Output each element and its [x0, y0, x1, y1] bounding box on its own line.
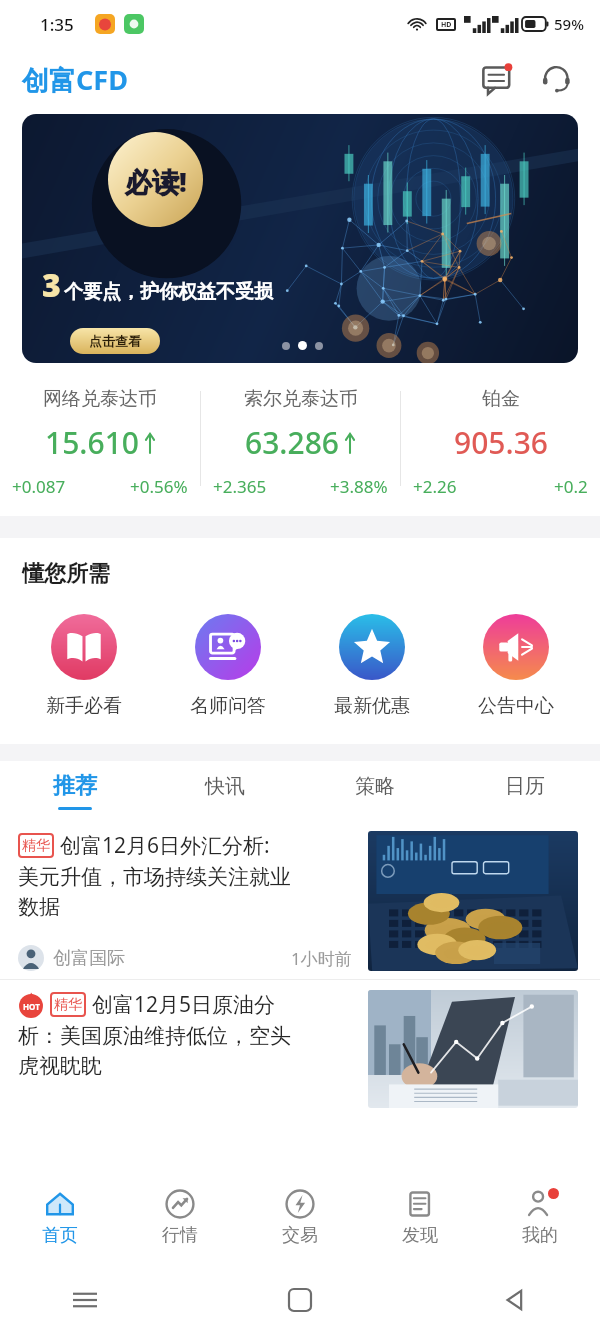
staticText: 虎视眈眈 — [18, 1053, 102, 1079]
staticText: 必读! — [125, 163, 187, 200]
button[interactable]: 首页 — [0, 1180, 120, 1266]
button[interactable]: 精华 — [0, 821, 600, 979]
button[interactable]: 新手必看 — [24, 614, 144, 718]
staticText: 行情 — [162, 1224, 198, 1247]
button[interactable]: 发现 — [360, 1180, 480, 1266]
button[interactable]: 名师问答 — [168, 614, 288, 718]
staticText: 905.36 — [454, 422, 548, 463]
staticText: +0.087 — [12, 475, 66, 498]
staticText: 公告中心 — [478, 694, 554, 718]
button[interactable]: Customer service — [534, 56, 580, 102]
staticText: 最新优惠 — [334, 694, 410, 718]
staticText: 数据 — [18, 894, 60, 920]
button[interactable]: Recents — [60, 1275, 110, 1325]
button[interactable]: Messages — [476, 56, 522, 102]
button[interactable]: 日历 — [450, 761, 600, 821]
staticText: 创富国际 — [53, 947, 125, 970]
button[interactable]: Home — [275, 1275, 325, 1325]
staticText: 创富12月6日外汇分析: — [60, 831, 270, 860]
staticText: 析：美国原油维持低位，空头 — [18, 1023, 291, 1049]
staticText: +2.365 — [213, 475, 267, 498]
button[interactable]: 推荐 — [0, 761, 150, 821]
button[interactable]: 最新优惠 — [312, 614, 432, 718]
staticText: 63.286 — [245, 422, 339, 463]
staticText: 3 — [42, 263, 61, 307]
staticText: 铂金 — [482, 387, 520, 411]
staticText: 索尔兑泰达币 — [244, 387, 358, 411]
button[interactable]: HOT — [0, 980, 600, 1108]
button[interactable]: 交易 — [240, 1180, 360, 1266]
staticText: 15.610 — [45, 422, 139, 463]
staticText: 名师问答 — [190, 694, 266, 718]
staticText: 1:35 — [40, 13, 74, 36]
staticText: 美元升值，市场持续关注就业 — [18, 864, 291, 890]
staticText: 1小时前 — [291, 947, 352, 970]
staticText: 懂您所需 — [22, 560, 110, 588]
staticText: 网络兑泰达币 — [43, 387, 157, 411]
staticText: 推荐 — [53, 772, 97, 800]
staticText: 交易 — [282, 1224, 318, 1247]
button[interactable]: 铂金 — [401, 363, 600, 516]
staticText: 精华 — [54, 996, 82, 1014]
staticText: +2.26 — [413, 475, 457, 498]
button[interactable]: 公告中心 — [456, 614, 576, 718]
staticText: 个要点，护你权益不受损 — [64, 280, 273, 304]
staticText: 快讯 — [205, 774, 245, 799]
staticText: HD — [441, 20, 452, 30]
staticText: HOT — [23, 1001, 40, 1012]
staticText: 新手必看 — [46, 694, 122, 718]
button[interactable]: 点击查看 — [70, 328, 160, 354]
button[interactable]: 快讯 — [150, 761, 300, 821]
button[interactable]: 策略 — [300, 761, 450, 821]
button[interactable]: 必读! — [22, 114, 578, 363]
staticText: 点击查看 — [89, 333, 141, 349]
staticText: 首页 — [42, 1224, 78, 1247]
staticText: 我的 — [522, 1224, 558, 1247]
button[interactable]: 索尔兑泰达币 — [201, 363, 400, 516]
staticText: 59% — [554, 14, 584, 34]
staticText: +0.2 — [554, 475, 588, 498]
staticText: 策略 — [355, 774, 395, 799]
staticText: 精华 — [22, 837, 50, 855]
button[interactable]: 网络兑泰达币 — [0, 363, 200, 516]
staticText: 日历 — [505, 774, 545, 799]
button[interactable]: 行情 — [120, 1180, 240, 1266]
staticText: 发现 — [402, 1224, 438, 1247]
staticText: +3.88% — [330, 475, 388, 498]
staticText: 创富12月5日原油分 — [92, 990, 276, 1019]
staticText: +0.56% — [130, 475, 188, 498]
button[interactable]: Back — [490, 1275, 540, 1325]
button[interactable]: 我的 — [480, 1180, 600, 1266]
staticText: 创富CFD — [22, 61, 128, 98]
